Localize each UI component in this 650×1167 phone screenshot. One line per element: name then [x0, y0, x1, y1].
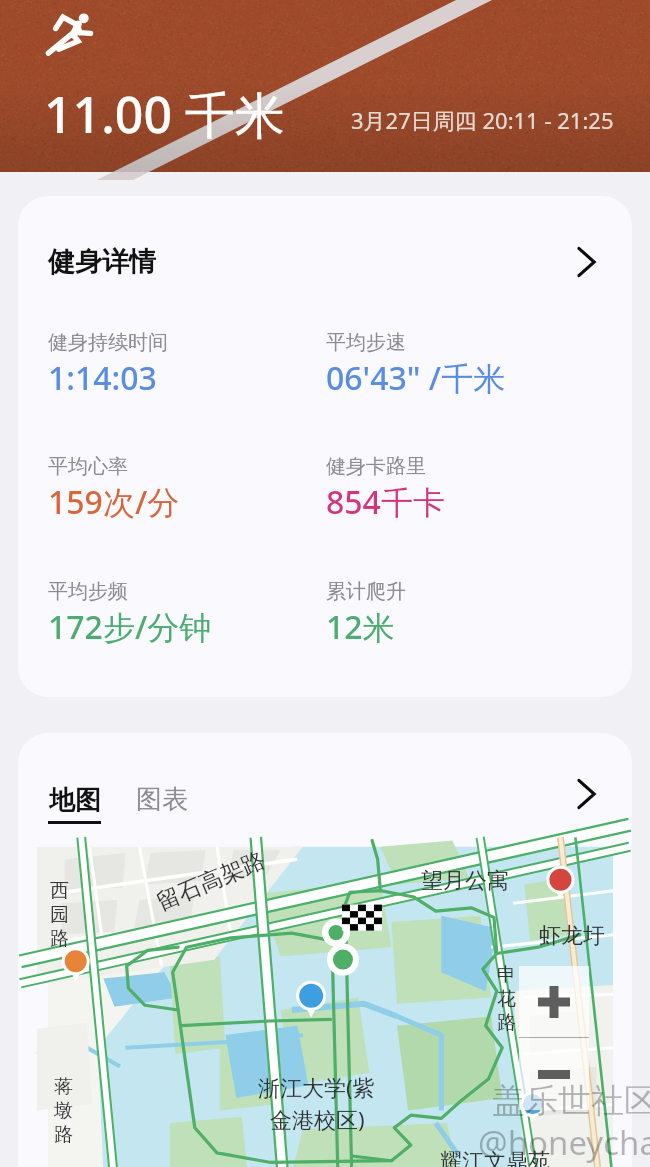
staticText: 3月27日周四 20:11 - 21:25 [351, 105, 614, 135]
staticText: 园 [50, 903, 69, 927]
staticText: 蒋 [54, 1075, 73, 1099]
staticText: 健身持续时间 [48, 330, 168, 355]
staticText: 图表 [136, 783, 188, 816]
staticText: 盖乐世社区 [492, 1080, 650, 1122]
staticText: 159次/分 [48, 480, 180, 524]
button[interactable]: Zoom in [519, 966, 589, 1037]
staticText: 路 [54, 1123, 73, 1147]
staticText: 12米 [326, 605, 395, 649]
staticText: 西 [50, 879, 69, 903]
staticText: 11.00 千米 [44, 80, 285, 148]
staticText: 1:14:03 [48, 356, 157, 400]
staticText: 累计爬升 [326, 579, 406, 604]
staticText: 路 [50, 927, 69, 951]
staticText: 健身详情 [48, 245, 156, 279]
staticText: 平均心率 [48, 454, 128, 479]
staticText: 金港校区) [270, 1104, 365, 1134]
staticText: 申 [497, 963, 516, 987]
staticText: 路 [497, 1011, 516, 1035]
staticText: 耀江文鼎苑 [440, 1148, 550, 1167]
staticText: 地图 [49, 784, 101, 817]
staticText: 平均步频 [48, 579, 128, 604]
staticText: 虾龙圩 [539, 922, 605, 950]
button[interactable]: Zoom out [519, 1038, 589, 1110]
staticText: 06'43" /千米 [326, 356, 506, 400]
staticText: 平均步速 [326, 330, 406, 355]
button[interactable]: 地图 [48, 784, 101, 824]
button[interactable]: 健身详情 [18, 196, 632, 697]
staticText: 留石高架路 [152, 845, 269, 917]
staticText: @honeychaoo [478, 1120, 650, 1165]
staticText: 浙江大学(紫 [258, 1072, 375, 1102]
staticText: 墩 [54, 1099, 73, 1123]
staticText: 健身卡路里 [326, 454, 426, 479]
other: Open details [567, 244, 603, 280]
other: Running [45, 10, 97, 62]
staticText: 花 [497, 987, 516, 1011]
other: Open map [567, 776, 603, 812]
staticText: 172步/分钟 [48, 605, 212, 649]
staticText: 望月公寓 [421, 867, 509, 895]
button[interactable]: 图表 [136, 783, 188, 824]
staticText: 854千卡 [326, 480, 445, 524]
